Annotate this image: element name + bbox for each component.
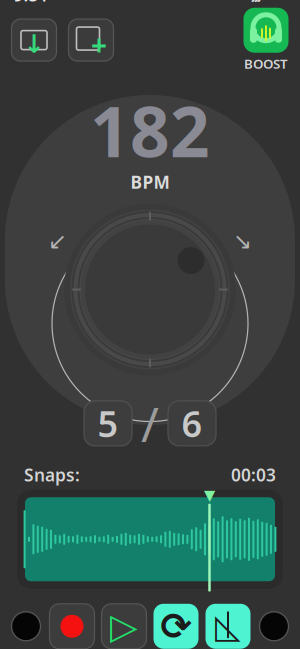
button[interactable]: Play [101,604,146,649]
staticText: 00:03 [231,463,276,486]
staticText: 5 [97,399,118,447]
staticText: + [91,26,107,63]
button[interactable]: Open project [11,19,56,61]
button[interactable]: Record [49,604,94,649]
staticText: ↙ [48,229,67,254]
staticText: BOOST [244,55,288,72]
staticText: ᯾ [249,0,261,4]
button[interactable]: Waveform [17,487,283,591]
staticText: ↘ [233,229,252,254]
staticText: 6 [181,399,202,447]
button[interactable]: Loop [153,604,198,649]
staticText: ↓ [23,30,44,58]
staticText: Snaps: [24,463,80,486]
button[interactable]: Left light [11,612,40,641]
staticText: 9:51 [13,0,48,6]
staticText: ▷ [110,606,138,647]
staticText: 182 [90,84,210,176]
staticText: ◺ [215,607,241,645]
staticText: ⟳ [160,605,191,647]
button[interactable]: New project [68,17,113,63]
staticText: ▼ [204,487,215,504]
button[interactable]: Boost [243,8,288,72]
staticText: BPM [130,170,169,193]
button[interactable]: 5 [84,401,132,446]
button[interactable]: 6 [168,401,216,446]
button[interactable]: Right light [259,612,288,641]
button[interactable]: Metronome [205,604,250,649]
staticText: / [141,391,159,455]
